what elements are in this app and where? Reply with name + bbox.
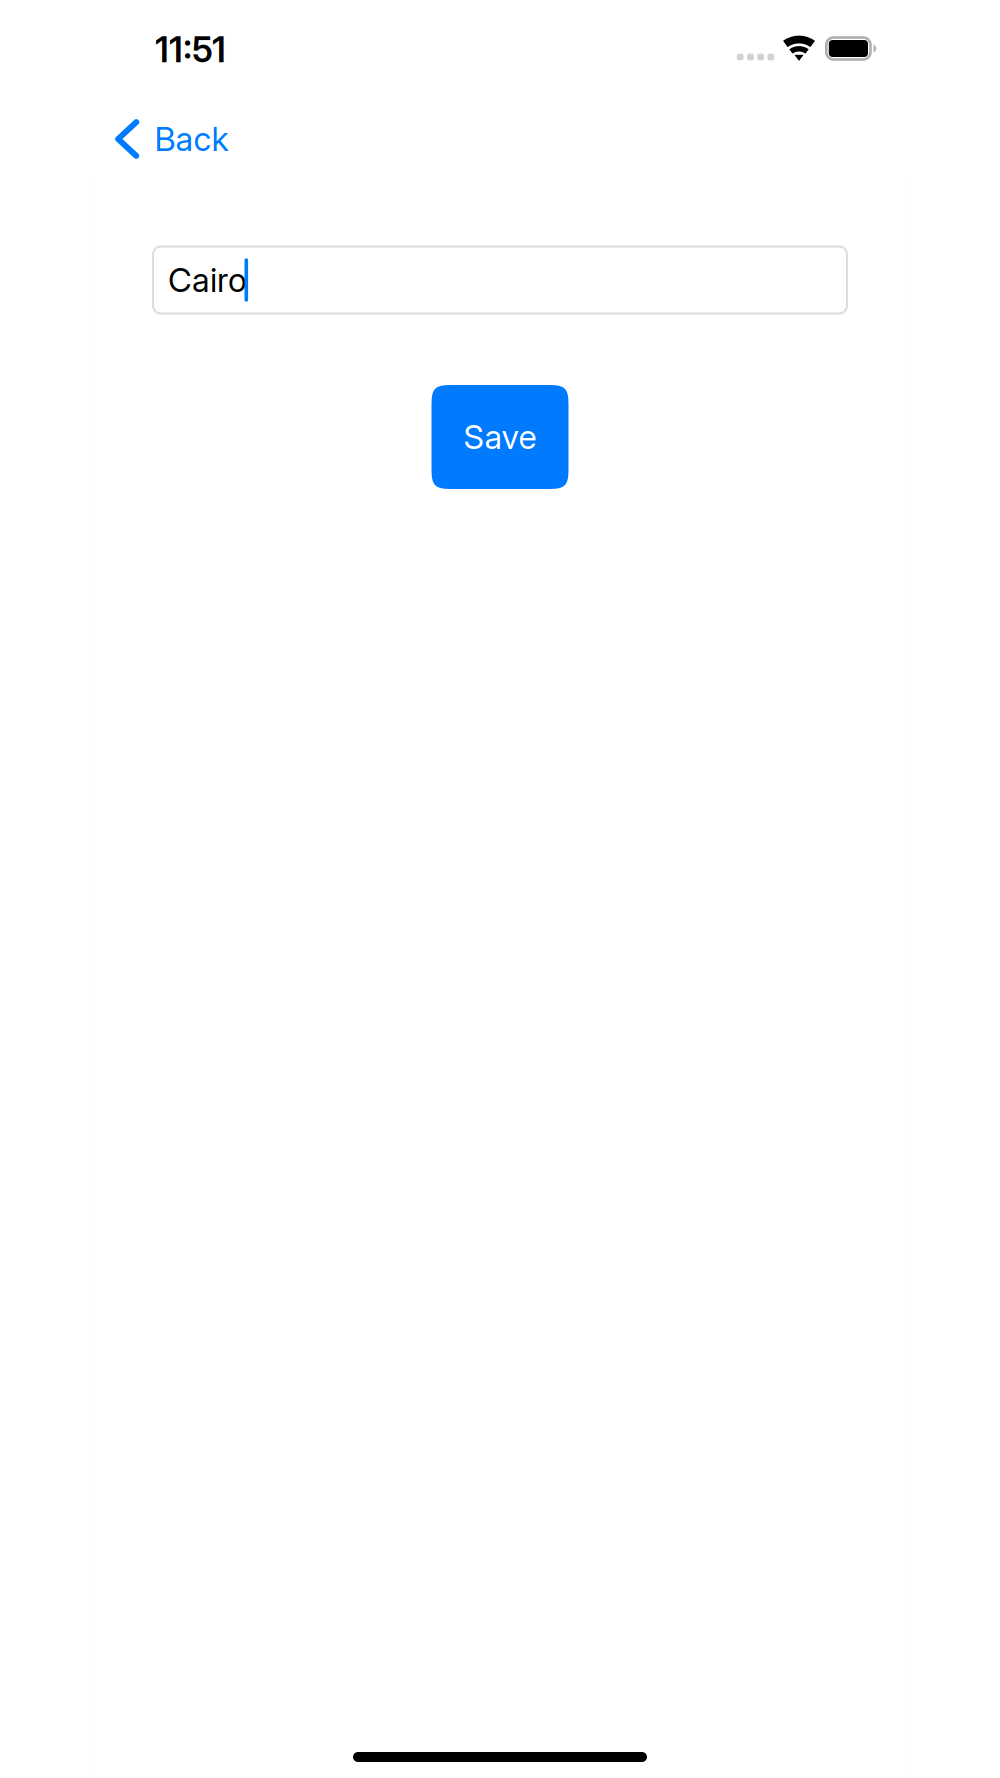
staticText: 11:51 [155,28,226,71]
staticText: Cairo [168,260,247,300]
staticText: Save [463,417,536,457]
button[interactable]: Save [431,385,568,489]
staticText: Back [154,119,228,159]
button[interactable]: Cairo [153,246,847,313]
button[interactable]: Back [105,95,244,183]
